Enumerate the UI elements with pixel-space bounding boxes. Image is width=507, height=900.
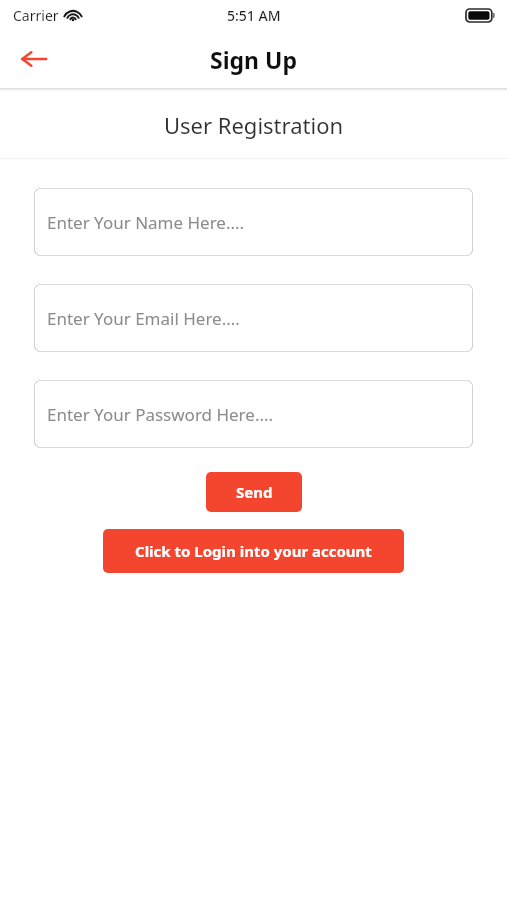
button[interactable]: Send	[206, 472, 302, 512]
staticText: Carrier	[13, 6, 59, 25]
button[interactable]: Enter Your Email Here....	[34, 284, 473, 352]
button[interactable]: Click to Login into your account	[103, 529, 404, 573]
staticText: User Registration	[0, 110, 507, 140]
staticText: Click to Login into your account	[135, 541, 372, 561]
staticText: Send	[236, 482, 273, 502]
staticText: Enter Your Password Here....	[47, 403, 274, 426]
button[interactable]: Enter Your Password Here....	[34, 380, 473, 448]
staticText: Enter Your Email Here....	[47, 307, 240, 330]
button[interactable]: Back	[12, 37, 56, 81]
staticText: Enter Your Name Here....	[47, 211, 245, 234]
button[interactable]: Enter Your Name Here....	[34, 188, 473, 256]
staticText: Sign Up	[210, 44, 297, 75]
staticText: 5:51 AM	[227, 6, 281, 25]
